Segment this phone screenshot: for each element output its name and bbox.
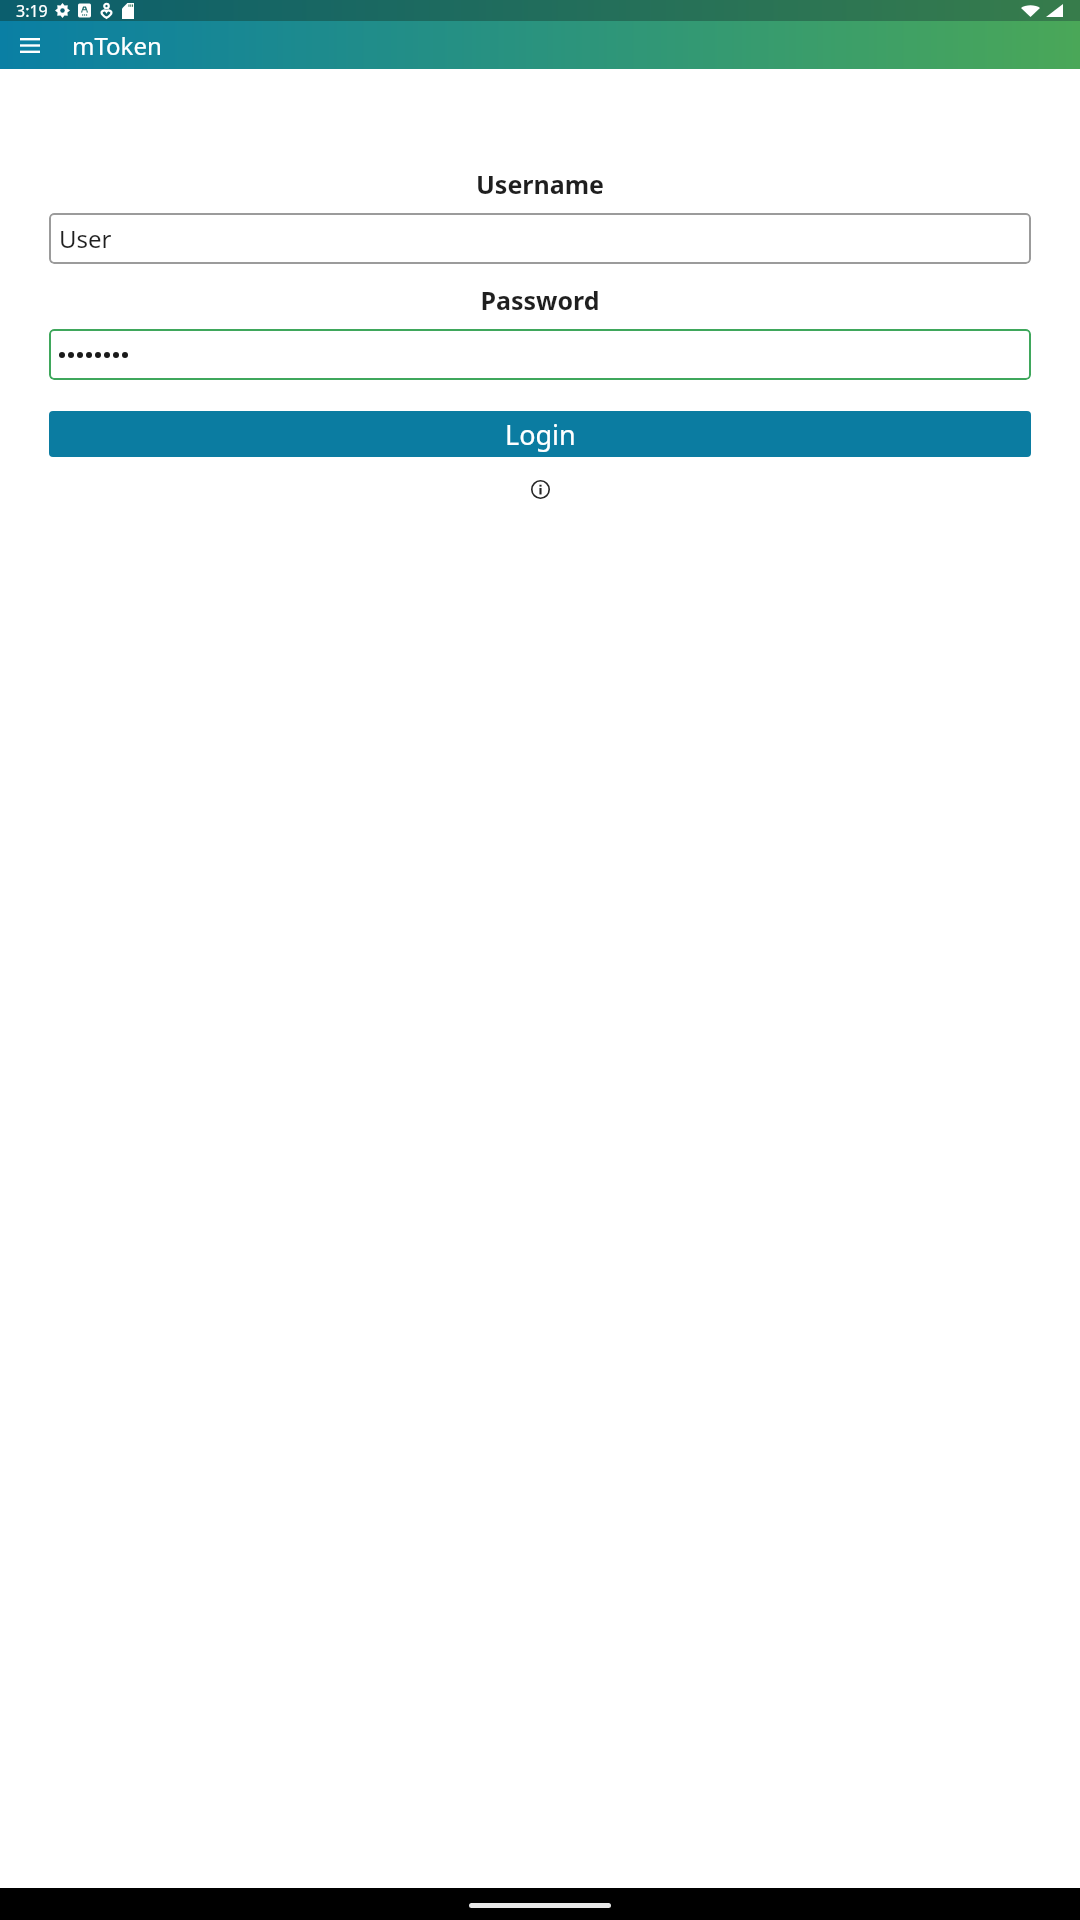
button[interactable]: Open navigation menu xyxy=(9,24,51,66)
button[interactable]: User xyxy=(49,213,1031,264)
staticText: Username xyxy=(0,167,1080,201)
staticText: User xyxy=(59,222,112,255)
staticText: mToken xyxy=(72,29,162,62)
staticText: Password xyxy=(0,283,1080,317)
staticText: 3:19 xyxy=(16,0,48,21)
button[interactable]: Login xyxy=(49,411,1031,457)
staticText: Login xyxy=(505,416,576,453)
button[interactable]: Information xyxy=(524,473,556,505)
button[interactable] xyxy=(49,329,1031,380)
